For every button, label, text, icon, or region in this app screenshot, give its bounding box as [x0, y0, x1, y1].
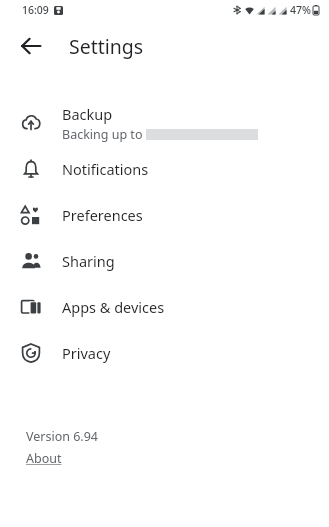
staticText: Notifications — [62, 159, 149, 179]
button[interactable]: Sharing — [0, 238, 329, 284]
button[interactable]: Preferences — [0, 192, 329, 238]
button[interactable]: Apps & devices — [0, 284, 329, 330]
staticText: Apps & devices — [62, 297, 165, 317]
staticText: 47% — [290, 3, 311, 17]
staticText: About — [26, 450, 62, 467]
staticText: Sharing — [62, 251, 115, 271]
button[interactable]: Back — [14, 29, 48, 63]
staticText: 16:09 — [22, 3, 49, 17]
staticText: Settings — [69, 33, 144, 60]
staticText: Version 6.94 — [26, 428, 99, 445]
button[interactable]: Privacy — [0, 330, 329, 376]
staticText: Backup — [62, 104, 113, 124]
staticText: Backing up to — [62, 126, 146, 143]
button[interactable]: Notifications — [0, 146, 329, 192]
staticText: Privacy — [62, 343, 111, 363]
button[interactable]: About — [26, 450, 62, 467]
button[interactable]: Backup — [0, 100, 329, 146]
staticText: Preferences — [62, 205, 143, 225]
